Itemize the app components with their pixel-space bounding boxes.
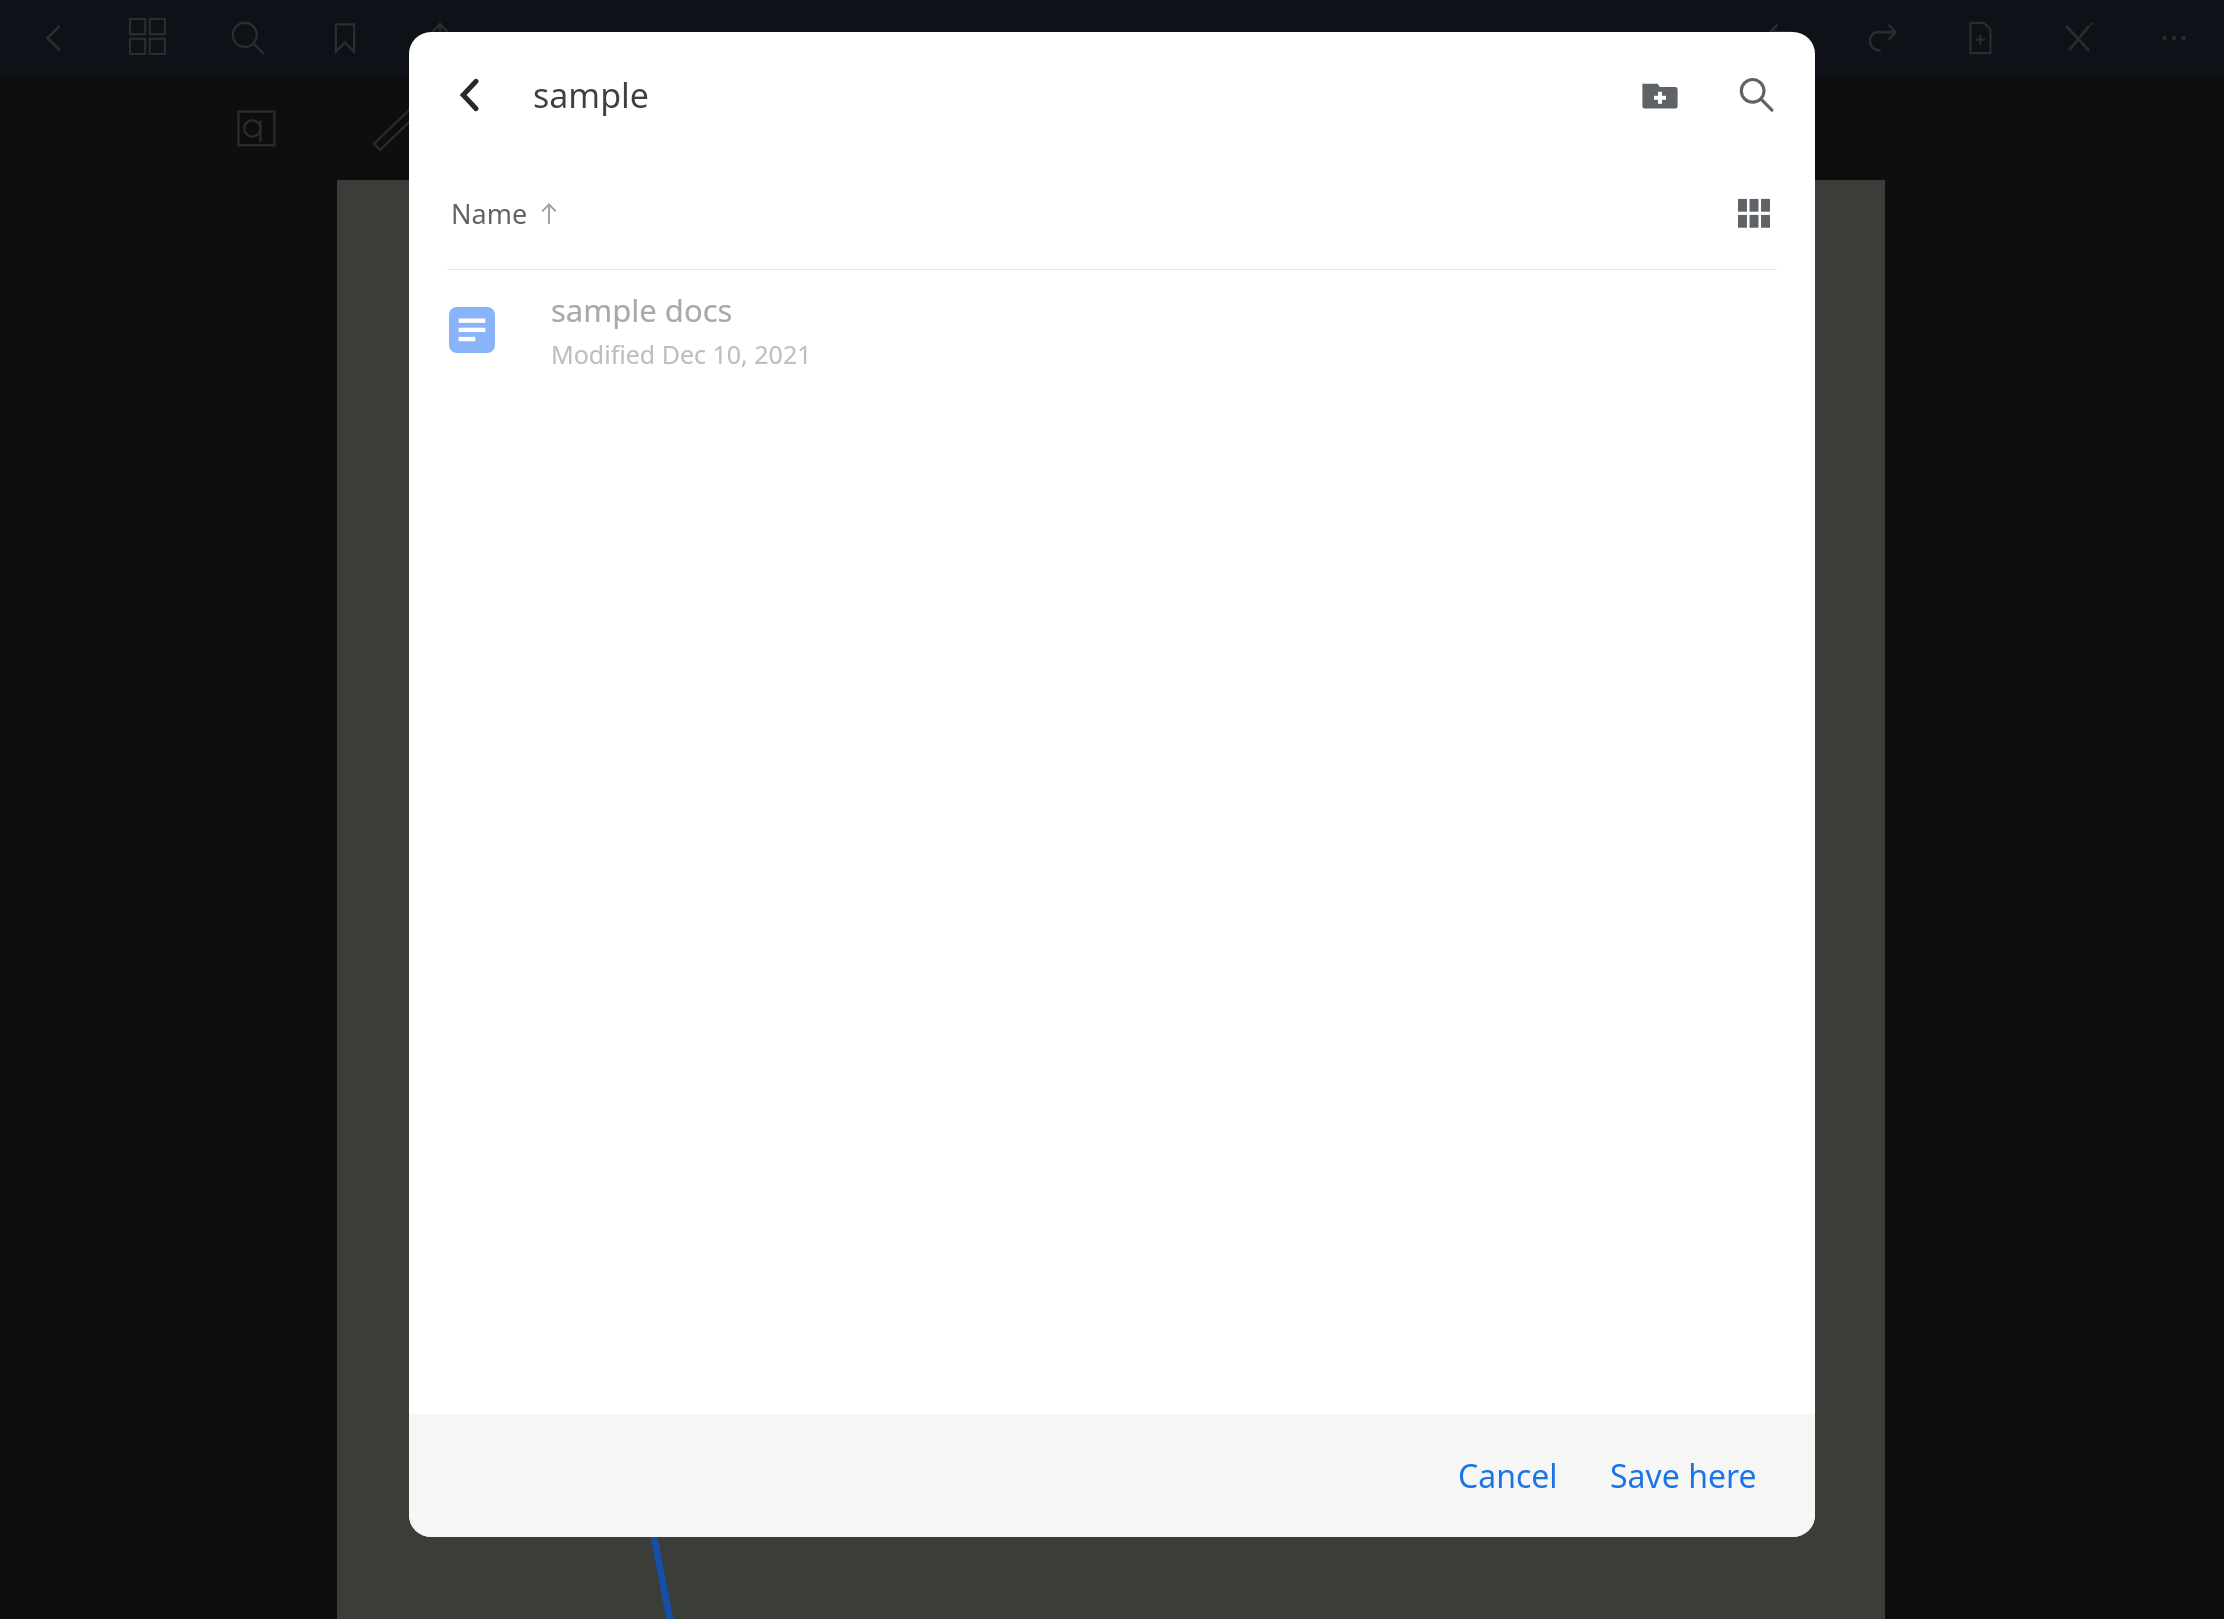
staticText: Name [451,195,528,232]
button[interactable]: Back [433,58,507,132]
staticText: Save here [1610,1454,1757,1498]
button[interactable]: sample docs [409,270,1815,390]
staticText: sample docs [551,289,733,331]
staticText: sample [533,72,650,118]
button[interactable]: Search [1719,58,1793,132]
button[interactable]: Cancel [1440,1440,1576,1512]
button[interactable]: Name [447,187,566,240]
staticText: Cancel [1458,1454,1558,1498]
staticText: Modified Dec 10, 2021 [551,337,812,371]
button[interactable]: New folder [1623,58,1697,132]
button[interactable]: Save here [1592,1440,1775,1512]
button[interactable]: Grid view [1721,180,1787,246]
